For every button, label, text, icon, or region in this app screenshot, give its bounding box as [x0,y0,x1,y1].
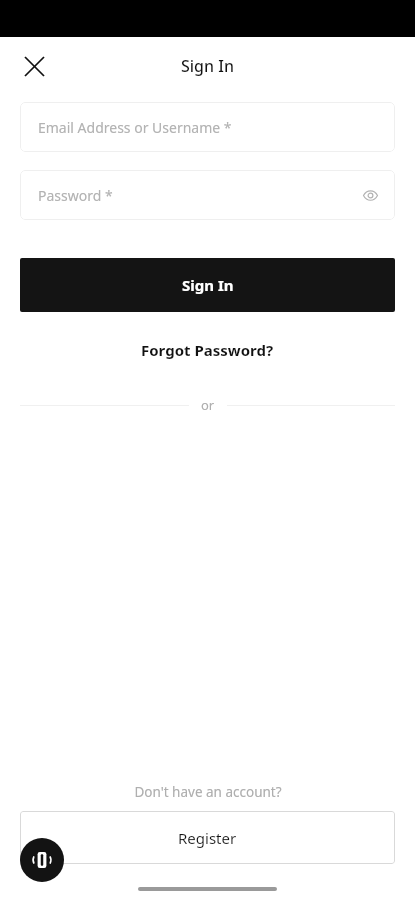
staticText: Password * [38,186,113,205]
staticText: Email Address or Username * [38,118,232,137]
button[interactable]: Forgot Password? [129,334,286,366]
button[interactable]: Password * [20,170,395,220]
button[interactable]: Close [14,46,54,86]
button[interactable]: Sign In [20,258,395,312]
staticText: Forgot Password? [141,340,274,360]
button[interactable]: Email Address or Username * [20,102,395,152]
staticText: Register [178,828,237,848]
staticText: Sign In [181,55,234,77]
staticText: Don't have an account? [134,783,282,801]
button[interactable]: Show password [353,178,387,212]
staticText: or [201,396,215,414]
button[interactable]: Register [20,811,395,864]
staticText: Sign In [182,275,234,295]
button[interactable]: Accessibility options [20,838,64,882]
